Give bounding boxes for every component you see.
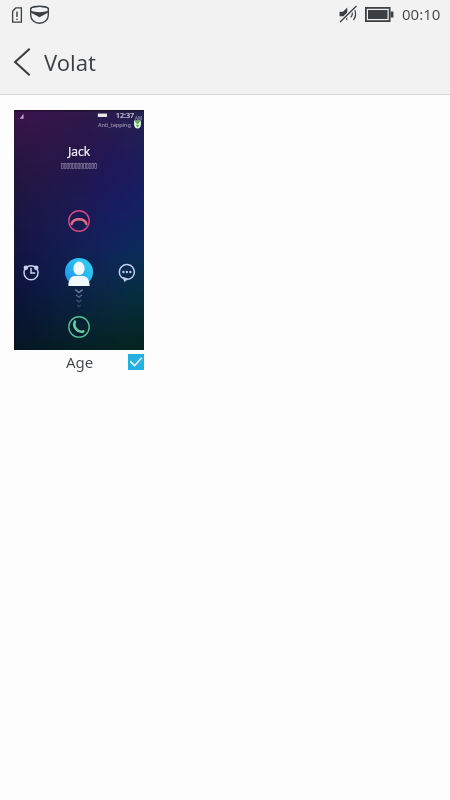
- staticText: AM: [135, 115, 142, 121]
- staticText: Volat: [44, 47, 97, 77]
- staticText: Anti_tapping: [98, 121, 131, 128]
- button[interactable]: Selected: [128, 354, 144, 370]
- staticText: Age: [66, 352, 94, 372]
- button[interactable]: Back: [0, 34, 44, 90]
- staticText: 12:37: [116, 111, 134, 121]
- staticText: Jack: [68, 143, 91, 159]
- staticText: 00:10: [402, 4, 441, 24]
- button[interactable]: 12:37: [14, 110, 144, 350]
